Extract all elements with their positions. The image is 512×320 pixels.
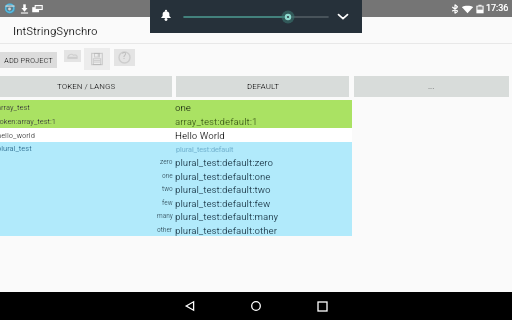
- staticText: plural_test:default:few: [175, 198, 271, 209]
- staticText: array_test:default:1: [175, 116, 258, 127]
- staticText: plural_test:default:one: [175, 171, 271, 182]
- staticText: plural_test:default:zero: [175, 157, 274, 168]
- button[interactable]: plural_test: [0, 142, 352, 155]
- button[interactable]: many: [0, 209, 352, 223]
- staticText: TOKEN / LANGS: [57, 82, 116, 91]
- button[interactable]: TOKEN / LANGS: [0, 76, 172, 97]
- button[interactable]: array_test: [0, 100, 352, 114]
- button[interactable]: Back: [168, 292, 212, 320]
- button[interactable]: few: [0, 196, 352, 210]
- staticText: one: [175, 102, 192, 113]
- staticText: array_test: [0, 103, 30, 112]
- button[interactable]: Recent apps: [300, 292, 344, 320]
- staticText: hello_world: [0, 131, 35, 140]
- button[interactable]: one: [0, 169, 352, 183]
- staticText: plural_test:default: [176, 145, 234, 153]
- other: Notification volume: [160, 8, 172, 22]
- staticText: IntStringSynchro: [13, 24, 98, 37]
- button[interactable]: Home: [234, 292, 278, 320]
- staticText: Hello World: [175, 130, 225, 141]
- button[interactable]: Help: [114, 49, 135, 66]
- button[interactable]: Save: [84, 48, 110, 70]
- staticText: plural_test:default:many: [175, 211, 279, 222]
- button[interactable]: other: [0, 223, 352, 237]
- staticText: one: [162, 172, 173, 180]
- staticText: two: [162, 185, 173, 193]
- staticText: few: [162, 199, 173, 207]
- button[interactable]: token:array_test:1: [0, 114, 352, 128]
- staticText: many: [157, 212, 173, 220]
- button[interactable]: ADD PROJECT: [0, 52, 57, 68]
- button[interactable]: two: [0, 182, 352, 196]
- button[interactable]: hello_world: [0, 128, 352, 142]
- staticText: ...: [428, 82, 435, 91]
- staticText: plural_test:default:two: [175, 184, 271, 195]
- staticText: token:array_test:1: [0, 117, 57, 126]
- staticText: DEFAULT: [247, 82, 279, 91]
- staticText: plural_test:default:other: [175, 225, 277, 236]
- staticText: ADD PROJECT: [4, 56, 53, 65]
- button[interactable]: Upload to cloud: [64, 50, 81, 62]
- button[interactable]: zero: [0, 155, 352, 169]
- button[interactable]: DEFAULT: [176, 76, 349, 97]
- staticText: ?: [122, 51, 127, 62]
- staticText: other: [157, 226, 173, 234]
- button[interactable]: Expand volume controls: [334, 7, 352, 25]
- staticText: plural_test: [0, 144, 32, 153]
- staticText: zero: [160, 158, 173, 166]
- staticText: 17:36: [486, 3, 509, 14]
